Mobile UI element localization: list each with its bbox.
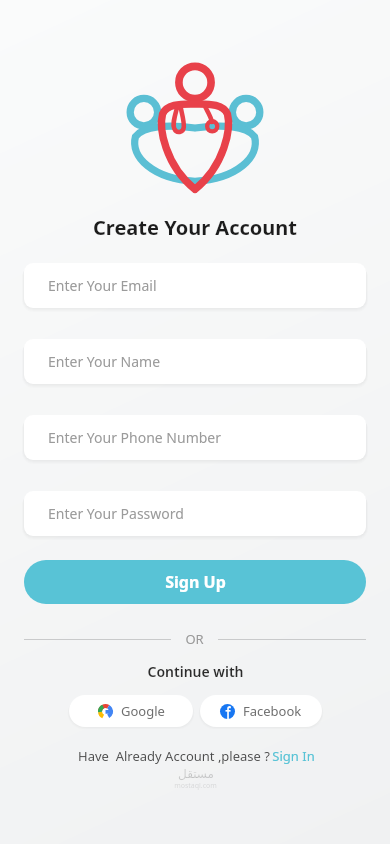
- button[interactable]: Enter Your Phone Number: [24, 415, 366, 460]
- staticText: Enter Your Phone Number: [48, 428, 222, 447]
- button[interactable]: Enter Your Name: [24, 339, 366, 384]
- staticText: مستقل: [178, 767, 214, 781]
- staticText: Sign In: [272, 747, 315, 765]
- staticText: Continue with: [147, 662, 244, 681]
- button[interactable]: Enter Your Password: [24, 491, 366, 536]
- staticText: Have Already Account ,please ?: [76, 747, 272, 765]
- staticText: Enter Your Password: [48, 504, 184, 523]
- other: Sign up with Google: [98, 704, 113, 719]
- other: App logo: [125, 62, 265, 194]
- button[interactable]: Sign up with Google: [69, 695, 193, 727]
- button[interactable]: Enter Your Email: [24, 263, 366, 308]
- staticText: Enter Your Name: [48, 352, 161, 371]
- staticText: Enter Your Email: [48, 276, 157, 295]
- button[interactable]: Sign up with Facebook: [200, 695, 322, 727]
- staticText: mostaql.com: [174, 781, 217, 791]
- other: Sign up with Facebook: [220, 704, 235, 719]
- staticText: OR: [185, 630, 204, 648]
- button[interactable]: Sign In: [272, 747, 315, 765]
- staticText: Sign Up: [165, 571, 226, 593]
- staticText: Create Your Account: [93, 214, 297, 241]
- staticText: Facebook: [243, 702, 302, 720]
- staticText: Google: [121, 702, 165, 720]
- button[interactable]: Sign Up: [24, 560, 366, 604]
